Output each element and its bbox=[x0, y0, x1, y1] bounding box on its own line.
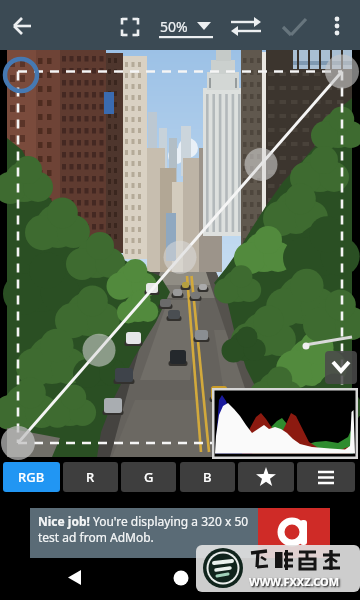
button[interactable]: R bbox=[63, 462, 118, 492]
button[interactable]: Nice job! You're displaying a 320 x 50 t… bbox=[30, 508, 330, 558]
staticText: Nice job! You're displaying a 320 x 50 t… bbox=[38, 513, 258, 545]
button[interactable] bbox=[113, 0, 147, 50]
button[interactable] bbox=[227, 0, 265, 50]
button[interactable]: G bbox=[121, 462, 176, 492]
staticText: R bbox=[86, 468, 95, 486]
button[interactable]: 50% bbox=[155, 0, 217, 50]
button[interactable] bbox=[325, 351, 357, 384]
staticText: WWW.FXXZ.COM bbox=[249, 574, 340, 589]
staticText: B bbox=[203, 468, 212, 486]
button[interactable] bbox=[156, 560, 206, 596]
button[interactable]: RGB bbox=[3, 462, 60, 492]
button[interactable] bbox=[278, 0, 312, 50]
staticText: RGB bbox=[18, 468, 45, 486]
button[interactable] bbox=[238, 462, 294, 492]
staticText: 50% bbox=[160, 17, 188, 36]
button[interactable] bbox=[326, 0, 354, 50]
button[interactable] bbox=[50, 560, 100, 596]
button[interactable]: B bbox=[180, 462, 235, 492]
button[interactable] bbox=[6, 0, 42, 50]
staticText: G bbox=[144, 468, 154, 486]
button[interactable] bbox=[297, 462, 355, 492]
